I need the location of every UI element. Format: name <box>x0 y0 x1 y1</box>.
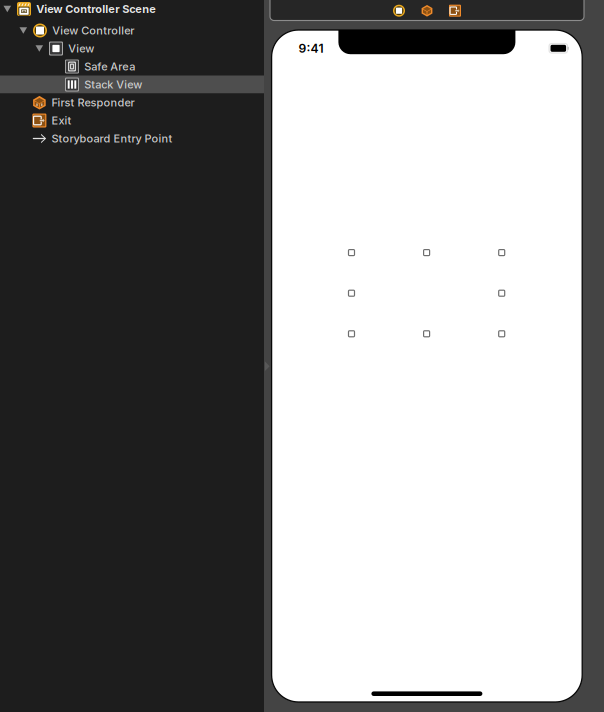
button[interactable]: First Responder <box>421 3 433 19</box>
staticText: Exit <box>52 114 72 127</box>
button[interactable]: View Controller Scene <box>0 0 264 18</box>
staticText: View Controller <box>52 24 134 37</box>
button[interactable]: Exit <box>0 111 264 129</box>
button[interactable]: View <box>0 39 264 57</box>
staticText: Stack View <box>84 78 142 91</box>
button[interactable]: Storyboard Entry Point <box>0 129 264 147</box>
button[interactable]: View Controller <box>0 21 264 39</box>
button[interactable]: Safe Area <box>0 57 264 75</box>
button[interactable]: Stack View <box>0 75 264 93</box>
staticText: View <box>68 42 94 55</box>
button[interactable]: View Controller <box>393 3 405 19</box>
staticText: View Controller Scene <box>36 2 156 16</box>
staticText: First Responder <box>52 96 135 109</box>
button[interactable]: Exit <box>449 3 461 19</box>
button[interactable]: First Responder <box>0 93 264 111</box>
staticText: Storyboard Entry Point <box>52 132 173 145</box>
staticText: 9:41 <box>299 41 324 56</box>
staticText: Safe Area <box>84 60 135 73</box>
